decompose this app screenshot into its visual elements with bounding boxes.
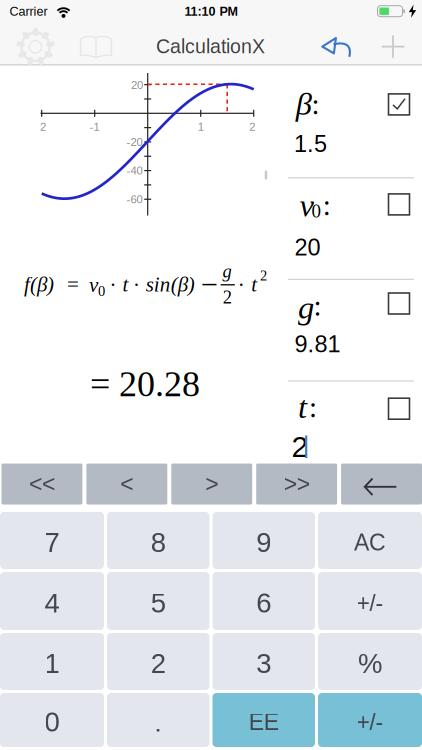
staticText: 2 — [249, 121, 255, 133]
button[interactable]: > — [171, 463, 252, 504]
staticText: 0 — [311, 200, 321, 221]
staticText: : — [323, 189, 331, 221]
button[interactable] — [387, 397, 410, 420]
button[interactable]: 3 — [212, 633, 315, 690]
button[interactable]: >> — [256, 463, 337, 504]
staticText: 11:10 PM — [184, 4, 237, 18]
button[interactable]: % — [318, 633, 422, 690]
staticText: 0 — [98, 283, 105, 299]
staticText: = 20.28 — [90, 364, 200, 404]
staticText: << — [29, 471, 55, 497]
staticText: 0 — [44, 707, 59, 737]
button[interactable] — [16, 28, 54, 66]
staticText: 3 — [256, 648, 271, 679]
button[interactable]: 9.81 — [294, 331, 340, 357]
button[interactable]: 1 — [0, 633, 104, 690]
staticText: t — [298, 389, 307, 425]
button[interactable]: EE — [212, 693, 315, 747]
button[interactable] — [387, 292, 410, 315]
staticText: 2 — [260, 267, 267, 284]
staticText: > — [205, 471, 218, 497]
staticText: : — [313, 290, 321, 322]
staticText: g — [222, 261, 231, 282]
staticText: v — [89, 273, 98, 297]
button[interactable]: +/- — [318, 693, 422, 747]
button[interactable]: 1.5 — [294, 131, 327, 157]
staticText: 2 — [291, 430, 308, 463]
staticText: : — [309, 391, 317, 423]
button[interactable]: 9 — [212, 512, 315, 569]
staticText: 7 — [44, 527, 59, 558]
button[interactable]: 4 — [0, 572, 104, 630]
button[interactable]: << — [1, 463, 82, 504]
button[interactable]: 20 — [294, 234, 320, 260]
staticText: t — [251, 273, 257, 296]
staticText: >> — [284, 471, 310, 497]
button[interactable]: 2 — [107, 633, 209, 690]
staticText: -60 — [126, 193, 142, 206]
staticText: -20 — [126, 136, 142, 148]
button[interactable] — [79, 36, 113, 59]
staticText: < — [120, 471, 133, 497]
staticText: β — [296, 86, 312, 122]
staticText: 1.5 — [294, 131, 327, 157]
staticText: : — [311, 88, 319, 120]
staticText: +/- — [356, 590, 383, 616]
staticText: +/- — [356, 709, 383, 735]
button[interactable] — [341, 463, 422, 504]
staticText: v — [299, 187, 313, 223]
staticText: -1 — [89, 121, 99, 133]
staticText: · — [133, 273, 140, 297]
staticText: 2 — [151, 648, 166, 679]
button[interactable]: AC — [318, 512, 422, 569]
staticText: sin(β) — [146, 273, 195, 296]
staticText: 20 — [131, 79, 143, 91]
button[interactable]: 8 — [107, 512, 209, 569]
staticText: · — [238, 273, 245, 297]
staticText: % — [358, 648, 382, 679]
staticText: CalculationX — [156, 36, 265, 57]
staticText: g — [298, 289, 314, 325]
button[interactable]: < — [86, 463, 167, 504]
staticText: -40 — [126, 164, 142, 177]
button[interactable] — [387, 193, 410, 216]
staticText: 1 — [44, 648, 59, 679]
staticText: AC — [354, 530, 386, 555]
staticText: 9 — [256, 527, 271, 558]
staticText: 5 — [151, 588, 166, 618]
button[interactable]: 5 — [107, 572, 209, 630]
staticText: 2 — [223, 287, 232, 308]
button[interactable]: +/- — [318, 572, 422, 630]
button[interactable]: 6 — [212, 572, 315, 630]
staticText: 4 — [44, 588, 59, 618]
staticText: f(β) — [24, 273, 54, 296]
staticText: EE — [249, 709, 279, 735]
staticText: 1 — [198, 121, 204, 133]
staticText: 9.81 — [294, 331, 340, 357]
staticText: Carrier — [9, 4, 47, 18]
button[interactable] — [321, 37, 350, 58]
staticText: 6 — [256, 588, 271, 618]
staticText: 8 — [151, 527, 166, 558]
staticText: 20 — [294, 234, 320, 260]
staticText: = — [67, 273, 79, 296]
button[interactable]: 7 — [0, 512, 104, 569]
staticText: · — [109, 273, 116, 297]
staticText: 2 — [40, 121, 46, 133]
button[interactable]: 2 — [291, 430, 308, 463]
button[interactable] — [381, 35, 405, 59]
button[interactable]: 0 — [0, 693, 104, 747]
button[interactable]: . — [107, 693, 209, 747]
staticText: . — [154, 707, 162, 737]
button[interactable] — [387, 93, 410, 116]
staticText: t — [122, 273, 128, 296]
